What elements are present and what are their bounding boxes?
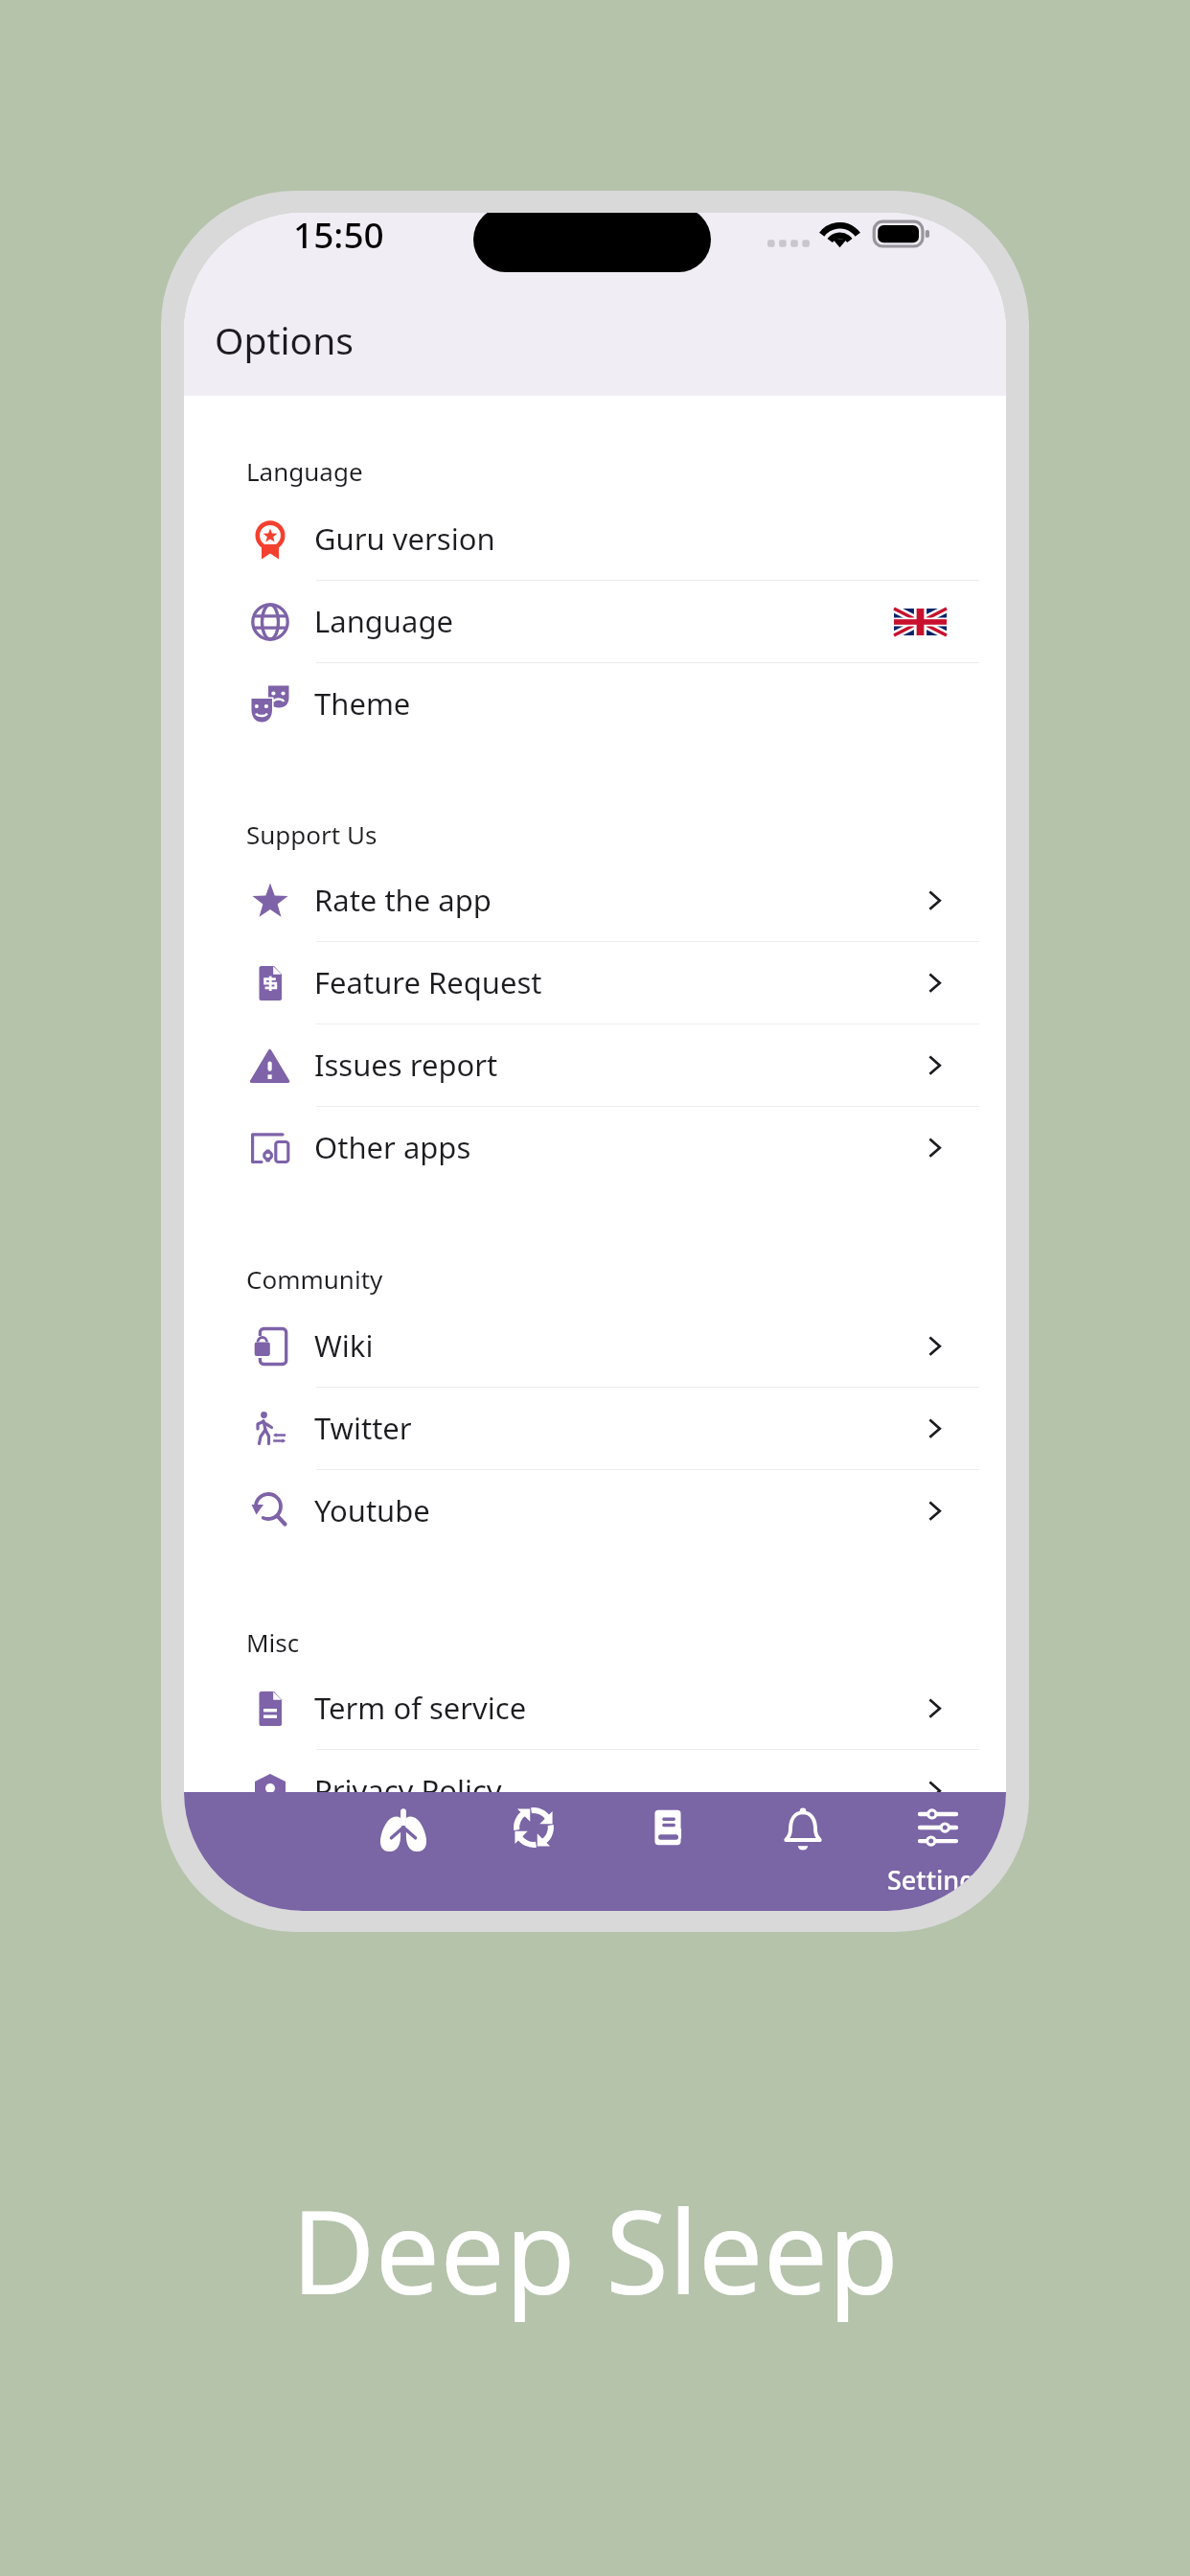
staticText: Issues report [314, 1045, 498, 1085]
button[interactable]: Theme [184, 663, 1006, 746]
button[interactable]: Other apps [184, 1107, 1006, 1189]
button[interactable]: Youtube [184, 1470, 1006, 1552]
staticText: Deep Sleep [291, 2172, 899, 2328]
staticText: Wiki [314, 1325, 374, 1366]
staticText: Misc [246, 1625, 300, 1659]
staticText: Privacy Policy [314, 1770, 502, 1810]
button[interactable]: Reminders [736, 1792, 870, 1911]
button[interactable]: Library [601, 1792, 735, 1911]
staticText: Support Us [246, 817, 378, 851]
button[interactable]: Language [184, 581, 1006, 663]
staticText: Guru version [314, 518, 495, 559]
staticText: Community [246, 1262, 383, 1296]
button[interactable]: Feature Request [184, 942, 1006, 1024]
button[interactable]: Cycles [467, 1792, 601, 1911]
button[interactable]: Twitter [184, 1388, 1006, 1470]
staticText: Youtube [314, 1490, 430, 1530]
button[interactable]: Rate the app [184, 860, 1006, 942]
button[interactable]: Issues report [184, 1024, 1006, 1107]
staticText: Language [314, 601, 453, 641]
staticText: 15:50 [293, 213, 384, 258]
staticText: Twitter [314, 1408, 412, 1448]
staticText: Other apps [314, 1127, 471, 1167]
staticText: Options [215, 314, 354, 365]
button[interactable]: Settings [871, 1792, 1005, 1911]
staticText: Rate the app [314, 880, 492, 920]
button[interactable]: Exercises [336, 1792, 470, 1911]
button[interactable]: Guru version [184, 498, 1006, 581]
staticText: Theme [314, 683, 411, 724]
button[interactable]: Wiki [184, 1305, 1006, 1388]
button[interactable]: Term of service [184, 1667, 1006, 1750]
staticText: Term of service [314, 1688, 527, 1728]
staticText: Language [246, 454, 363, 488]
staticText: Settings [887, 1862, 989, 1897]
staticText: Feature Request [314, 962, 542, 1002]
button[interactable]: Privacy Policy [184, 1750, 1006, 1832]
